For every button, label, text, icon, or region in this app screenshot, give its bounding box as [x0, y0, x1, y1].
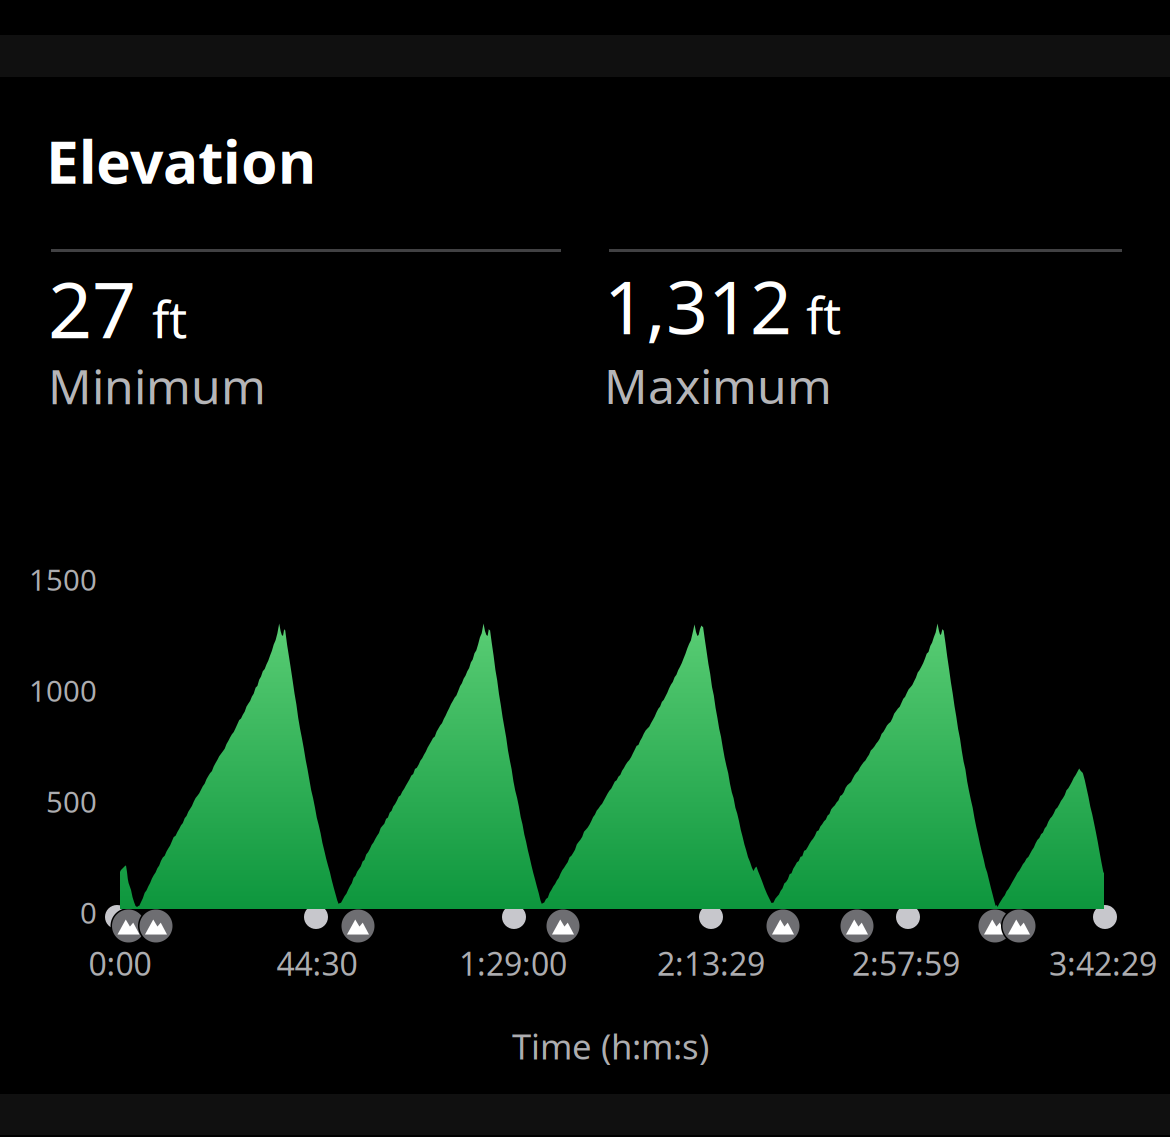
button[interactable]: Climb 6 — [839, 908, 875, 944]
staticText: 500 — [46, 782, 97, 821]
staticText: ft — [152, 285, 187, 352]
staticText: Time (h:m:s) — [512, 1023, 709, 1069]
button[interactable]: Lap 6 — [1093, 905, 1117, 929]
button[interactable]: Lap 2 — [304, 905, 328, 929]
staticText: 44:30 — [276, 942, 357, 984]
staticText: 1,312 — [604, 257, 792, 354]
staticText: Elevation — [46, 122, 316, 200]
button[interactable]: Climb 5 — [765, 908, 801, 944]
staticText: 27 — [48, 257, 136, 360]
button[interactable]: Climb 3 — [340, 908, 376, 944]
button[interactable]: 27 — [48, 257, 558, 423]
staticText: 3:42:29 — [1049, 942, 1157, 984]
staticText: ft — [806, 281, 841, 348]
button[interactable]: Lap 4 — [699, 905, 723, 929]
staticText: 0 — [80, 893, 97, 932]
button[interactable]: Climb 8 — [1001, 908, 1037, 944]
staticText: 2:13:29 — [657, 942, 765, 984]
button[interactable]: Climb 1 — [110, 908, 146, 944]
button[interactable]: Lap 5 — [896, 905, 920, 929]
button[interactable]: Climb 4 — [545, 908, 581, 944]
button[interactable]: Lap 1 — [105, 905, 129, 929]
staticText: 2:57:59 — [852, 942, 960, 984]
staticText: 1:29:00 — [459, 942, 567, 984]
staticText: 0:00 — [88, 942, 151, 984]
staticText: Maximum — [604, 353, 832, 417]
button[interactable]: Climb 2 — [138, 908, 174, 944]
staticText: 1500 — [29, 560, 97, 599]
button[interactable]: Climb 7 — [977, 908, 1013, 944]
button[interactable]: Lap 3 — [502, 905, 526, 929]
staticText: Minimum — [48, 354, 266, 417]
button[interactable]: 1,312 — [604, 257, 1117, 418]
staticText: 1000 — [29, 671, 97, 710]
